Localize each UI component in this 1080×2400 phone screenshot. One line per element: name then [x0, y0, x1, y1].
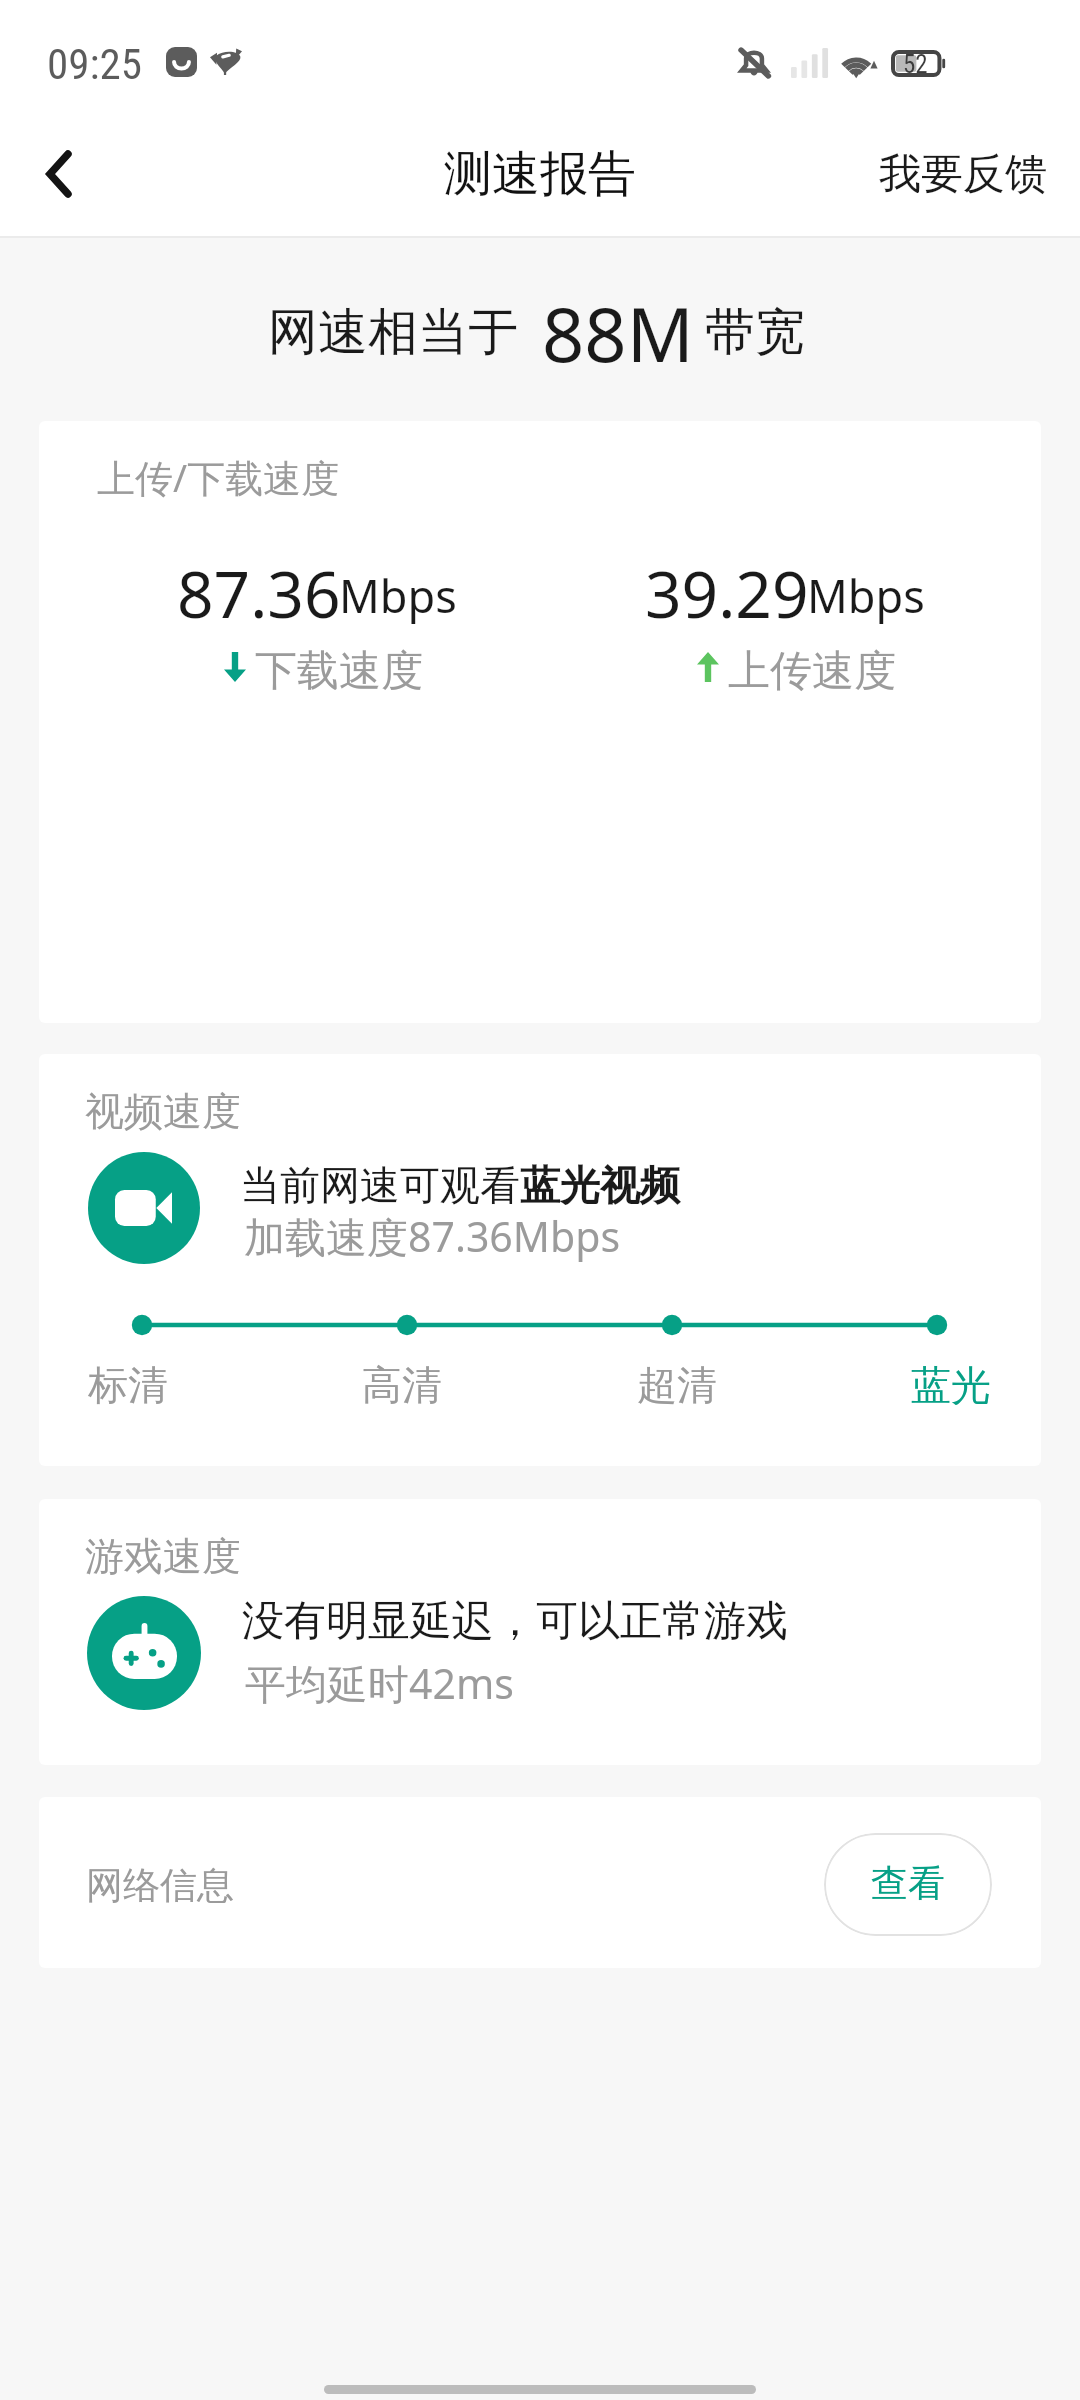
staticText: 超清 — [637, 1360, 717, 1410]
staticText: 网速相当于 — [268, 301, 518, 364]
staticText: 标清 — [88, 1360, 168, 1410]
staticText: 高清 — [362, 1360, 442, 1410]
staticText: 测速报告 — [444, 144, 636, 204]
staticText: 视频速度 — [85, 1087, 241, 1136]
staticText: 没有明显延迟，可以正常游戏 — [242, 1595, 788, 1648]
staticText: 88M — [542, 283, 694, 384]
staticText: 当前网速可观看蓝光视频 — [240, 1160, 680, 1210]
staticText: 09:25 — [47, 39, 142, 89]
staticText: 52 — [903, 50, 928, 79]
staticText: 上传/下载速度 — [97, 451, 340, 503]
button[interactable]: Back — [0, 110, 110, 238]
button[interactable]: 我要反馈 — [879, 110, 1047, 238]
button[interactable]: 查看 — [824, 1833, 992, 1936]
staticText: 查看 — [871, 1860, 945, 1907]
staticText: 下载速度 — [255, 645, 423, 698]
staticText: 蓝光 — [911, 1360, 991, 1410]
staticText: 87.36 — [177, 550, 341, 637]
staticText: Mbps — [807, 565, 925, 626]
staticText: 游戏速度 — [85, 1532, 241, 1581]
button[interactable]: 测速报告 — [444, 144, 636, 204]
staticText: Mbps — [339, 565, 457, 626]
staticText: 39.29 — [645, 550, 809, 637]
staticText: 我要反馈 — [879, 148, 1047, 201]
staticText: 上传速度 — [728, 645, 896, 698]
staticText: 带宽 — [705, 301, 805, 364]
staticText: 平均延时42ms — [245, 1655, 514, 1711]
staticText: 网络信息 — [86, 1862, 234, 1909]
staticText: 加载速度87.36Mbps — [244, 1208, 621, 1264]
